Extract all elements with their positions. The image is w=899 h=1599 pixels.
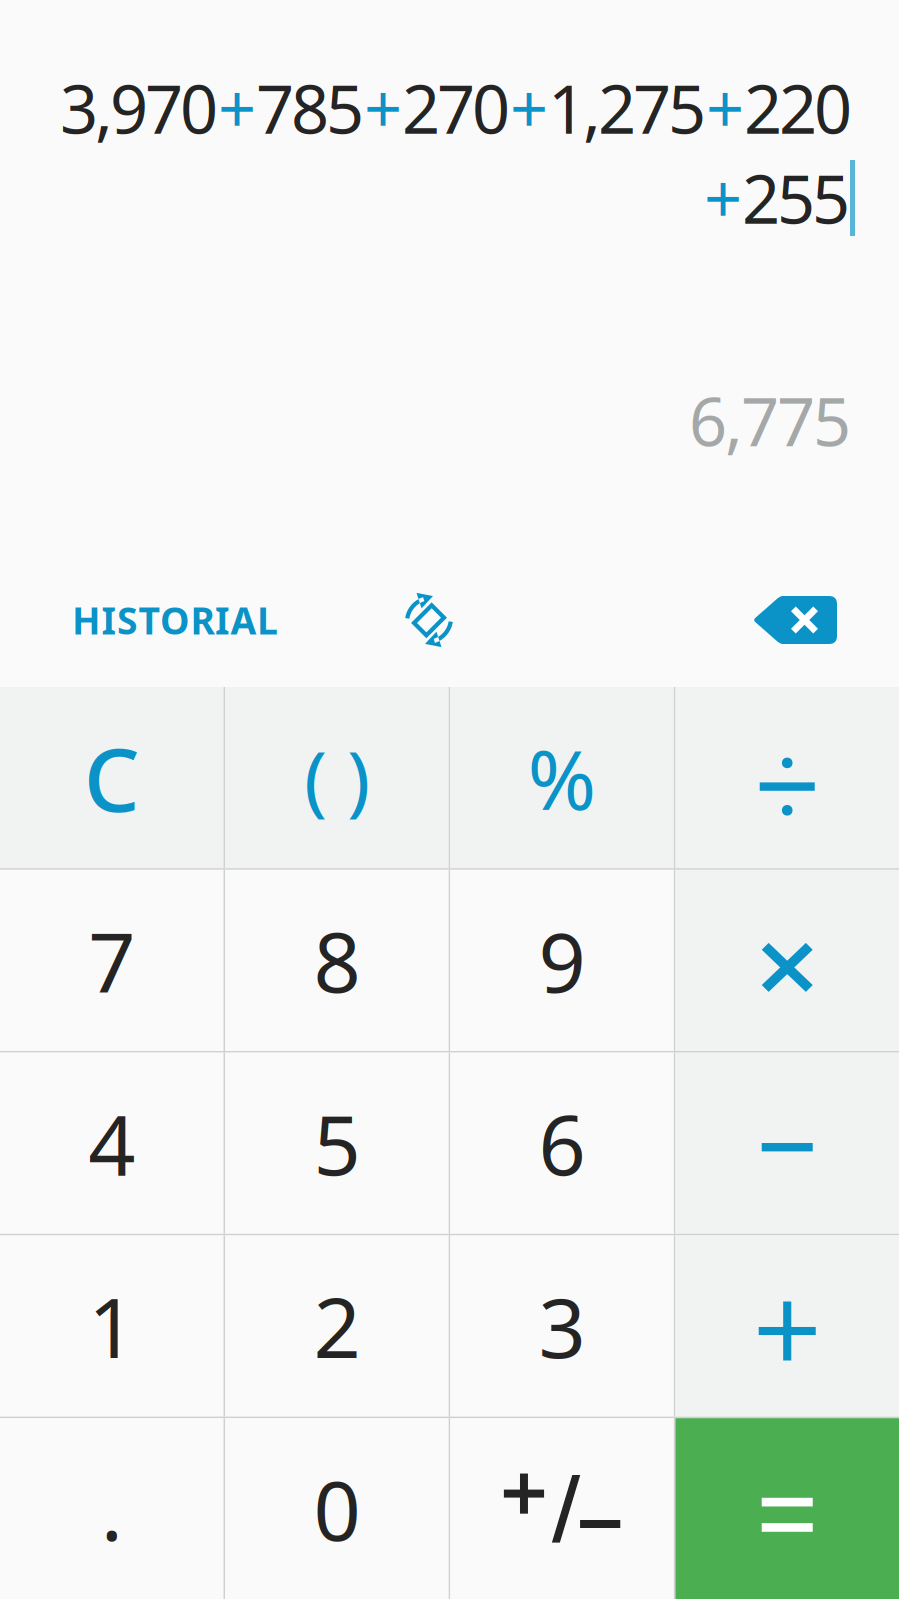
button[interactable]: 8 xyxy=(225,870,449,1051)
staticText: 220 xyxy=(744,64,852,152)
staticText: 1,275 xyxy=(548,64,706,152)
staticText: 6,775 xyxy=(689,376,851,464)
staticText: 270 xyxy=(402,64,510,152)
button[interactable]: 0 xyxy=(225,1418,449,1599)
button[interactable]: 3 xyxy=(450,1235,674,1417)
button[interactable]: Divide xyxy=(675,687,899,868)
staticText: 785 xyxy=(256,64,364,152)
button[interactable]: 6 xyxy=(450,1053,674,1234)
staticText: . xyxy=(101,1454,123,1564)
button[interactable]: Toggle sign xyxy=(450,1418,674,1599)
button[interactable]: 1 xyxy=(0,1235,223,1417)
staticText: HISTORIAL xyxy=(72,595,278,645)
button[interactable]: Multiply xyxy=(675,870,899,1051)
button[interactable]: Add xyxy=(675,1235,899,1417)
staticText: + xyxy=(704,154,742,242)
button[interactable]: HISTORIAL xyxy=(0,574,312,666)
staticText: 2 xyxy=(313,1271,360,1381)
staticText: 8 xyxy=(313,905,360,1015)
button[interactable]: 5 xyxy=(225,1053,449,1234)
staticText: 9 xyxy=(539,905,586,1015)
staticText: 0 xyxy=(313,1454,360,1564)
staticText: + xyxy=(218,64,256,152)
staticText: ( ) xyxy=(304,726,370,829)
button[interactable]: C xyxy=(0,687,223,868)
button[interactable]: 2 xyxy=(225,1235,449,1417)
staticText: 4 xyxy=(88,1088,135,1198)
staticText: + xyxy=(510,64,548,152)
button[interactable]: Rotate screen xyxy=(374,565,484,675)
button[interactable]: Subtract xyxy=(675,1053,899,1234)
button[interactable]: % xyxy=(450,687,674,868)
button[interactable]: Equals xyxy=(675,1418,899,1599)
staticText: 5 xyxy=(313,1088,360,1198)
staticText: 7 xyxy=(88,905,135,1015)
button[interactable]: 4 xyxy=(0,1053,223,1234)
staticText: C xyxy=(84,719,140,836)
staticText: + xyxy=(706,64,744,152)
staticText: 255 xyxy=(742,154,850,242)
button[interactable]: Backspace xyxy=(731,568,899,672)
staticText: 6 xyxy=(539,1088,586,1198)
button[interactable]: . xyxy=(0,1418,223,1599)
staticText: 3 xyxy=(539,1271,586,1381)
staticText: % xyxy=(528,723,597,832)
staticText: 1 xyxy=(88,1271,135,1381)
staticText: + xyxy=(364,64,402,152)
button[interactable]: 7 xyxy=(0,870,223,1051)
button[interactable]: ( ) xyxy=(225,687,449,868)
button[interactable]: 9 xyxy=(450,870,674,1051)
staticText: 3,970 xyxy=(60,64,218,152)
